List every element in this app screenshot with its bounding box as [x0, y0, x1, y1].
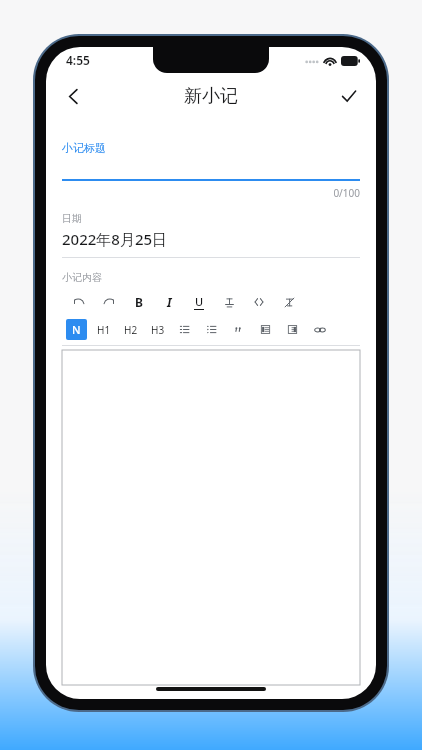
staticText: 0/100	[62, 186, 360, 200]
staticText: H3	[151, 323, 165, 337]
button[interactable]: H2	[120, 319, 141, 340]
staticText: I	[167, 294, 172, 310]
button[interactable]: Redo	[98, 291, 120, 313]
staticText: U	[195, 294, 204, 309]
button[interactable]: N	[66, 319, 87, 340]
other: Redo	[102, 295, 116, 309]
staticText: N	[72, 322, 81, 337]
button[interactable]	[62, 350, 360, 685]
other: Strikethrough	[223, 296, 236, 309]
other: Clear format	[283, 296, 296, 309]
button[interactable]: U	[188, 291, 210, 313]
button[interactable]: Save	[330, 77, 368, 115]
button[interactable]: B	[128, 291, 150, 313]
button[interactable]: Strikethrough	[218, 291, 240, 313]
staticText: 4:55	[66, 52, 90, 68]
staticText: 2022年8月25日	[62, 229, 168, 249]
button[interactable]: Back	[54, 77, 92, 115]
button[interactable]: Numbered list	[174, 319, 195, 340]
staticText: 新小记	[184, 85, 238, 108]
other: Outdent	[286, 323, 299, 336]
staticText: B	[135, 294, 143, 310]
button[interactable]: Bullet list	[201, 319, 222, 340]
other: Numbered list	[178, 323, 191, 336]
button[interactable]: Code	[248, 291, 270, 313]
other: Bullet list	[205, 323, 218, 336]
other: Quote	[232, 323, 245, 336]
button[interactable]: Indent	[255, 319, 276, 340]
button[interactable]: Link	[309, 319, 330, 340]
staticText: 小记内容	[62, 271, 102, 284]
button[interactable]: Clear format	[278, 291, 300, 313]
button[interactable]: Outdent	[282, 319, 303, 340]
other: Link	[313, 323, 327, 337]
staticText: H1	[97, 323, 111, 337]
staticText: 日期	[62, 212, 82, 225]
button[interactable]: 2022年8月25日	[62, 229, 360, 249]
other: Code	[252, 295, 266, 309]
staticText: H2	[124, 323, 138, 337]
other: Indent	[259, 323, 272, 336]
button[interactable]: Quote	[228, 319, 249, 340]
button[interactable]: I	[158, 291, 180, 313]
other: Undo	[72, 295, 86, 309]
staticText: 小记标题	[62, 141, 106, 155]
button[interactable]: H1	[93, 319, 114, 340]
button[interactable]: H3	[147, 319, 168, 340]
button[interactable]: Undo	[68, 291, 90, 313]
